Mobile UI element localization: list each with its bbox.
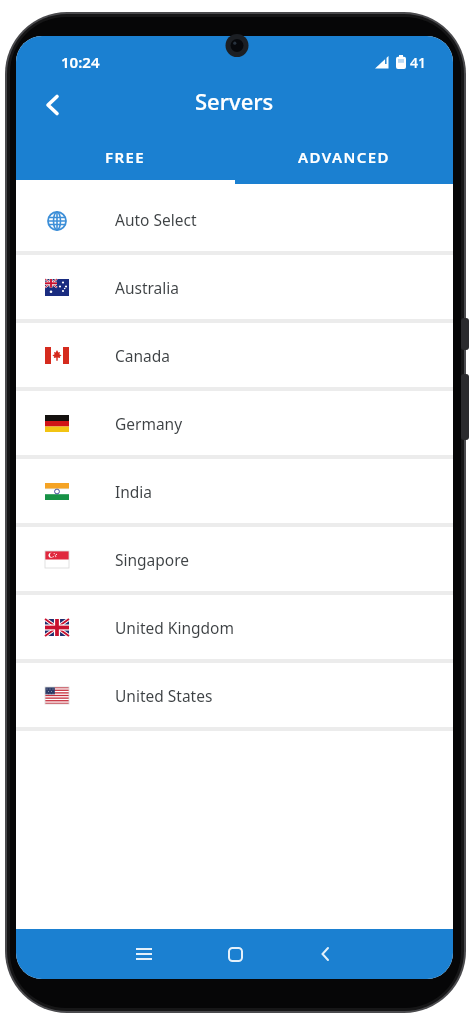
staticText: Servers — [195, 86, 274, 116]
staticText: United Kingdom — [115, 617, 234, 638]
staticText: Singapore — [115, 549, 190, 570]
button[interactable]: Germany — [16, 391, 453, 455]
staticText: 10:24 — [61, 52, 100, 72]
button[interactable]: United States — [16, 663, 453, 727]
button[interactable] — [305, 934, 345, 974]
staticText: 41 — [410, 53, 427, 72]
button[interactable]: Australia — [16, 255, 453, 319]
button[interactable]: ADVANCED — [234, 129, 453, 184]
button[interactable]: Auto Select — [16, 187, 453, 251]
staticText: United States — [115, 685, 213, 706]
button[interactable]: United Kingdom — [16, 595, 453, 659]
button[interactable] — [215, 934, 255, 974]
staticText: Canada — [115, 345, 170, 366]
button[interactable] — [34, 87, 70, 123]
staticText: ADVANCED — [298, 147, 390, 167]
button[interactable]: FREE — [16, 129, 234, 184]
staticText: India — [115, 481, 153, 502]
button[interactable]: Canada — [16, 323, 453, 387]
staticText: Germany — [115, 413, 183, 434]
staticText: Auto Select — [115, 209, 197, 230]
staticText: Australia — [115, 277, 179, 298]
button[interactable]: India — [16, 459, 453, 523]
staticText: FREE — [105, 147, 146, 167]
button[interactable]: Singapore — [16, 527, 453, 591]
button[interactable] — [124, 934, 164, 974]
